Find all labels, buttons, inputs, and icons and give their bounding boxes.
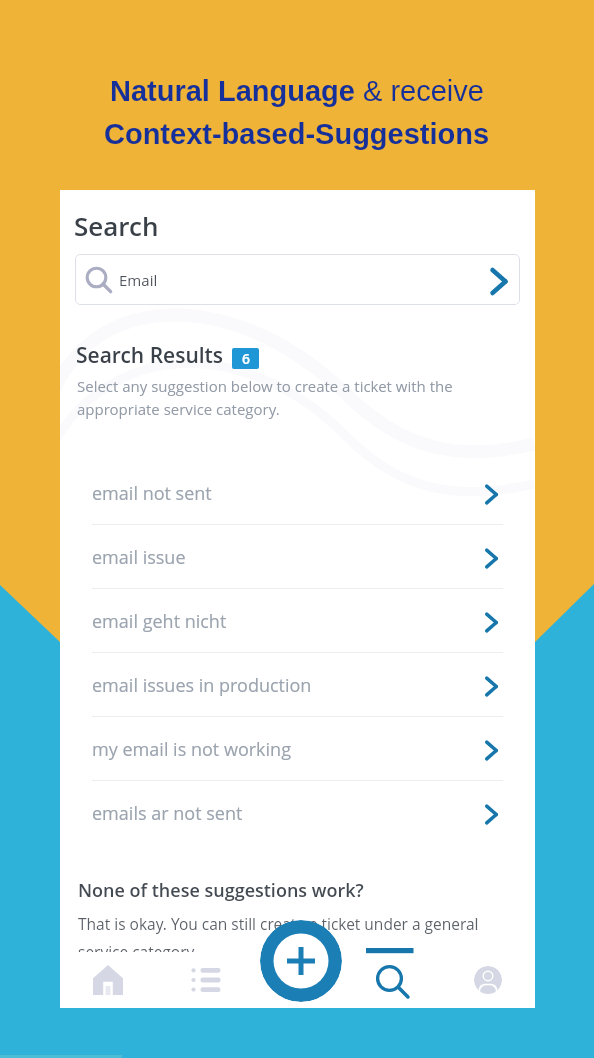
staticText: email issues in production: [92, 673, 312, 698]
staticText: None of these suggestions work?: [78, 878, 364, 903]
staticText: emails ar not sent: [92, 801, 243, 826]
button[interactable]: email geht nicht: [60, 589, 535, 653]
button[interactable]: Create ticket: [260, 920, 342, 1002]
button[interactable]: email not sent: [60, 461, 535, 525]
button[interactable]: my email is not working: [60, 717, 535, 781]
staticText: Search Results: [76, 341, 224, 370]
staticText: Select any suggestion below to create a …: [77, 376, 477, 419]
button[interactable]: Search: [345, 952, 440, 1008]
button[interactable]: Home: [60, 952, 155, 1008]
button[interactable]: Profile: [440, 952, 535, 1008]
button[interactable]: email issue: [60, 525, 535, 589]
staticText: Natural Language & receive: [110, 75, 484, 107]
staticText: email geht nicht: [92, 609, 227, 634]
staticText: 6: [242, 349, 250, 368]
button[interactable]: emails ar not sent: [60, 781, 535, 845]
button[interactable]: Email: [75, 254, 520, 305]
staticText: Context-based-Suggestions: [104, 118, 490, 150]
staticText: email issue: [92, 545, 186, 570]
button[interactable]: email issues in production: [60, 653, 535, 717]
staticText: Email: [119, 270, 158, 290]
button[interactable]: Tickets: [155, 952, 250, 1008]
staticText: my email is not working: [92, 737, 292, 762]
staticText: That is okay. You can still create a tic…: [78, 913, 517, 963]
staticText: email not sent: [92, 481, 212, 506]
staticText: Search: [74, 208, 159, 243]
